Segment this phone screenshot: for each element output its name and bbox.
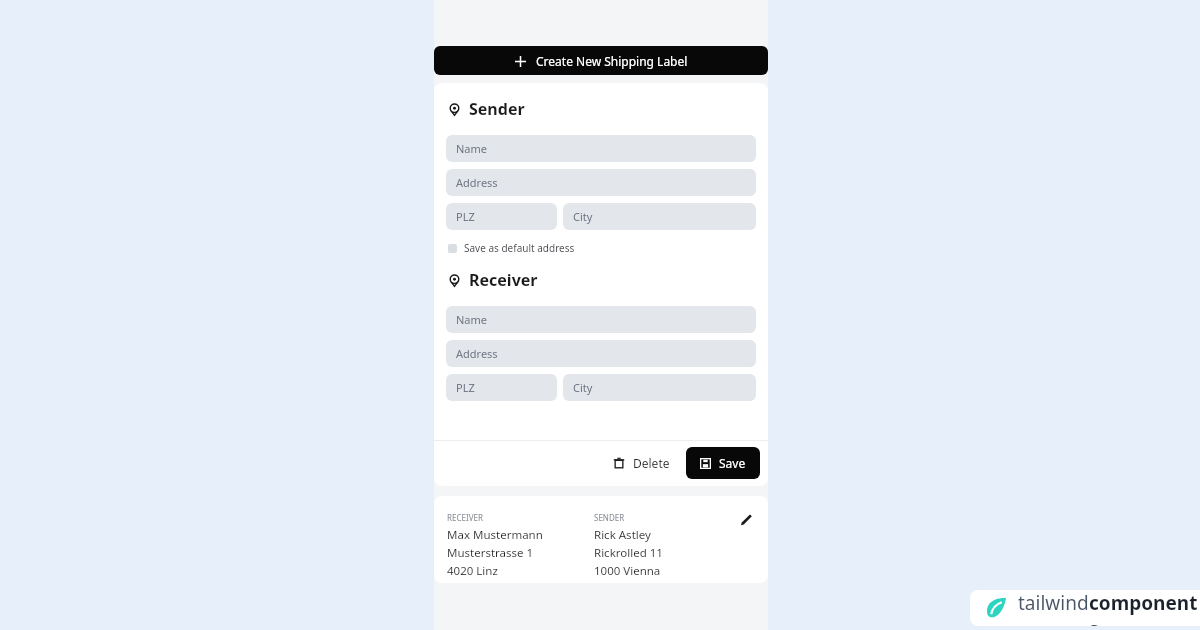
- staticText: 1000 Vienna: [594, 563, 661, 579]
- staticText: PLZ: [456, 380, 475, 395]
- button[interactable]: Name: [446, 306, 756, 333]
- button[interactable]: Save: [686, 447, 760, 479]
- button[interactable]: Address: [446, 340, 756, 367]
- staticText: Musterstrasse 1: [447, 545, 534, 561]
- staticText: Rickrolled 11: [594, 545, 663, 561]
- button[interactable]: PLZ: [446, 374, 557, 401]
- staticText: tailwind: [1018, 590, 1089, 616]
- staticText: Max Mustermann: [447, 527, 543, 543]
- button[interactable]: Save as default address: [446, 239, 577, 257]
- staticText: Delete: [633, 455, 670, 471]
- button[interactable]: Address: [446, 169, 756, 196]
- staticText: SENDER: [594, 512, 625, 523]
- staticText: Receiver: [469, 269, 538, 291]
- button[interactable]: City: [563, 203, 756, 230]
- button[interactable]: PLZ: [446, 203, 557, 230]
- button[interactable]: Delete: [603, 448, 680, 478]
- staticText: Save: [719, 455, 746, 471]
- staticText: 4020 Linz: [447, 563, 498, 579]
- staticText: Create New Shipping Label: [536, 53, 688, 69]
- staticText: RECEIVER: [447, 512, 483, 523]
- button[interactable]: RECEIVER: [434, 496, 768, 583]
- button[interactable]: Create New Shipping Label: [434, 46, 768, 75]
- staticText: City: [573, 209, 593, 224]
- staticText: Address: [456, 175, 498, 190]
- staticText: Name: [456, 312, 488, 327]
- staticText: Name: [456, 141, 488, 156]
- staticText: components: [1089, 590, 1200, 626]
- button[interactable]: tailwind: [970, 590, 1200, 626]
- staticText: Save as default address: [464, 241, 575, 255]
- button[interactable]: Name: [446, 135, 756, 162]
- staticText: Sender: [469, 98, 525, 120]
- staticText: City: [573, 380, 593, 395]
- staticText: PLZ: [456, 209, 475, 224]
- button[interactable]: City: [563, 374, 756, 401]
- staticText: Rick Astley: [594, 527, 651, 543]
- button[interactable]: Edit: [734, 508, 758, 532]
- staticText: Address: [456, 346, 498, 361]
